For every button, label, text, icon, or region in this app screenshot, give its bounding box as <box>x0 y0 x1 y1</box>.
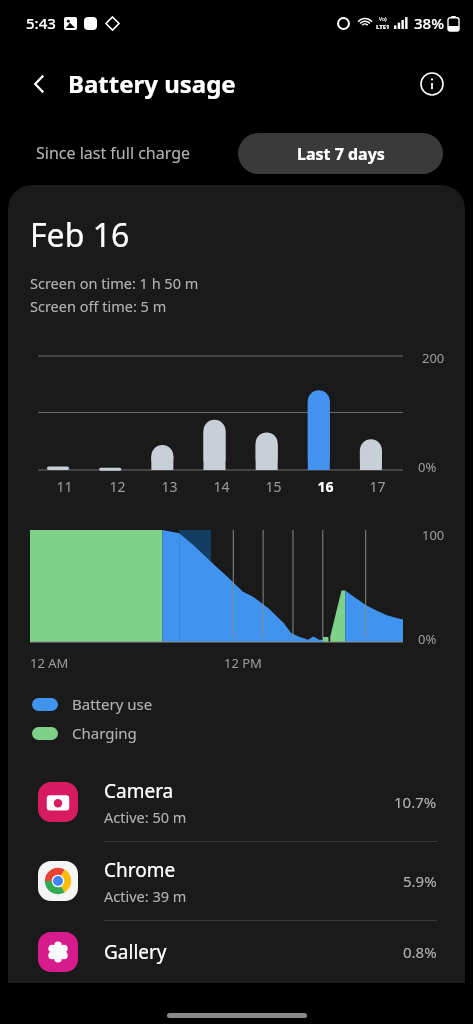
staticText: Screen on time: 1 h 50 m <box>30 273 199 293</box>
staticText: 0% <box>418 458 437 476</box>
staticText: 12 <box>109 477 126 496</box>
staticText: Camera <box>104 778 174 804</box>
staticText: Battery usage <box>68 67 236 100</box>
button[interactable]: Last 7 days <box>238 133 443 174</box>
button[interactable]: Since last full charge <box>30 136 197 170</box>
staticText: 5.9% <box>403 871 437 891</box>
staticText: 12 PM <box>224 654 262 672</box>
staticText: Vo) <box>379 16 387 23</box>
staticText: Chrome <box>104 857 176 883</box>
staticText: 38% <box>414 13 444 33</box>
staticText: 14 <box>213 477 230 496</box>
staticText: 13 <box>161 477 178 496</box>
staticText: 15 <box>265 477 282 496</box>
staticText: 200 <box>422 349 445 367</box>
staticText: Gallery <box>104 939 167 965</box>
staticText: Battery use <box>72 694 153 714</box>
staticText: 0% <box>418 630 437 648</box>
staticText: 12 AM <box>30 654 69 672</box>
button[interactable]: Chrome <box>8 842 465 921</box>
button[interactable]: Gallery <box>8 921 465 983</box>
staticText: Active: 39 m <box>104 886 187 906</box>
button[interactable]: Back <box>18 62 62 106</box>
staticText: Active: 50 m <box>104 807 187 827</box>
staticText: 11 <box>56 477 73 496</box>
staticText: Since last full charge <box>36 142 191 164</box>
staticText: 5:43 <box>26 13 56 33</box>
staticText: 17 <box>369 477 386 496</box>
button[interactable]: Information <box>411 63 453 105</box>
staticText: 16 <box>317 477 334 496</box>
staticText: Screen off time: 5 m <box>30 296 167 316</box>
staticText: LTE1 <box>376 23 390 31</box>
staticText: 100 <box>422 526 445 544</box>
staticText: Feb 16 <box>30 213 130 257</box>
staticText: Last 7 days <box>297 143 385 165</box>
staticText: 0.8% <box>403 942 437 962</box>
staticText: Charging <box>72 723 137 743</box>
button[interactable]: Camera <box>8 763 465 842</box>
staticText: 10.7% <box>394 792 437 812</box>
